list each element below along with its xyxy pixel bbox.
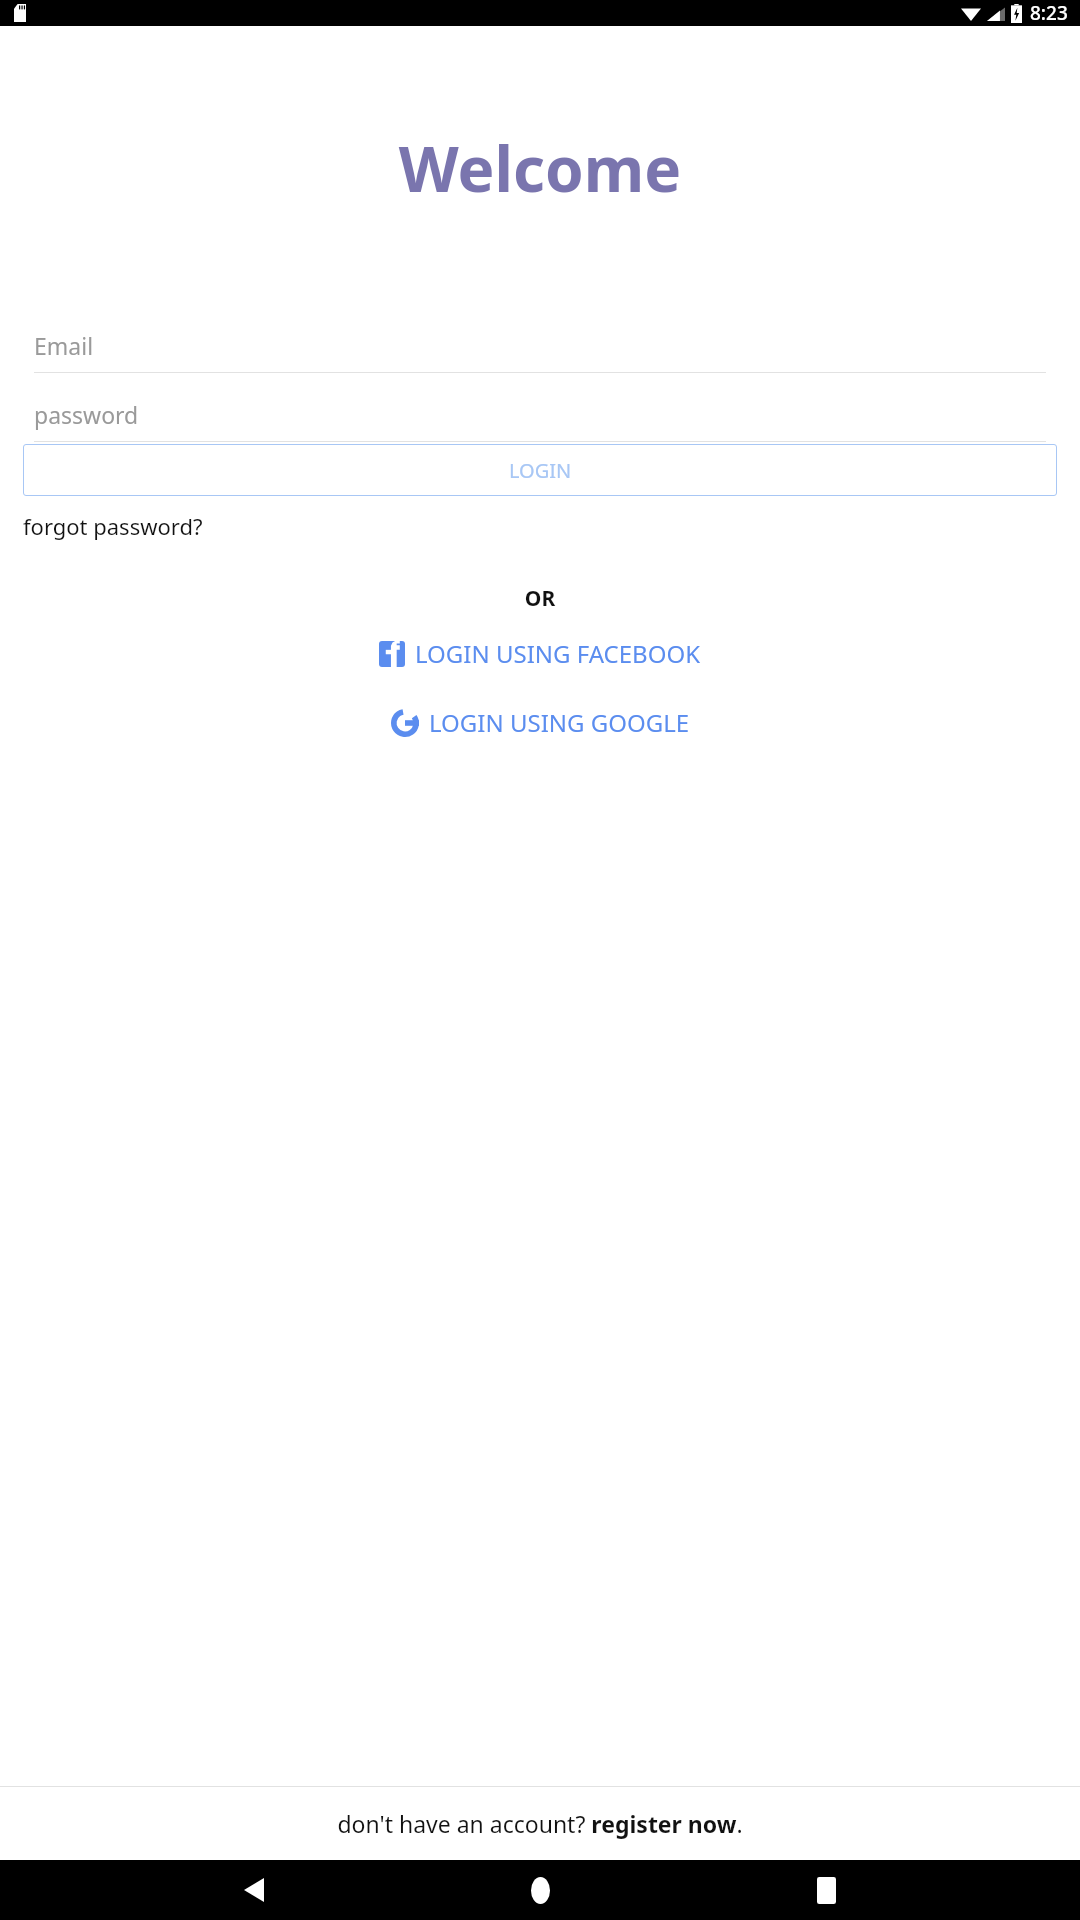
- button[interactable]: Email: [34, 318, 1046, 373]
- button[interactable]: don't have an account? register now.: [0, 1787, 1080, 1860]
- button[interactable]: Google: [0, 700, 1080, 745]
- button[interactable]: Home: [508, 1860, 572, 1920]
- staticText: OR: [0, 584, 1080, 613]
- staticText: Email: [34, 330, 94, 361]
- button[interactable]: LOGIN: [23, 444, 1057, 496]
- staticText: Welcome: [0, 126, 1080, 210]
- button[interactable]: Recent apps: [794, 1860, 858, 1920]
- staticText: 8:23: [1030, 0, 1068, 26]
- other: Google: [391, 709, 419, 737]
- staticText: don't have an account? register now.: [337, 1808, 743, 1839]
- button[interactable]: Facebook: [0, 631, 1080, 676]
- staticText: LOGIN: [509, 457, 572, 484]
- staticText: password: [34, 399, 139, 430]
- button[interactable]: Back: [222, 1860, 286, 1920]
- button[interactable]: password: [34, 387, 1046, 442]
- staticText: LOGIN USING FACEBOOK: [415, 637, 701, 670]
- button[interactable]: forgot password?: [23, 508, 203, 544]
- staticText: LOGIN USING GOOGLE: [429, 706, 690, 739]
- other: Facebook: [379, 641, 405, 667]
- staticText: forgot password?: [23, 511, 203, 541]
